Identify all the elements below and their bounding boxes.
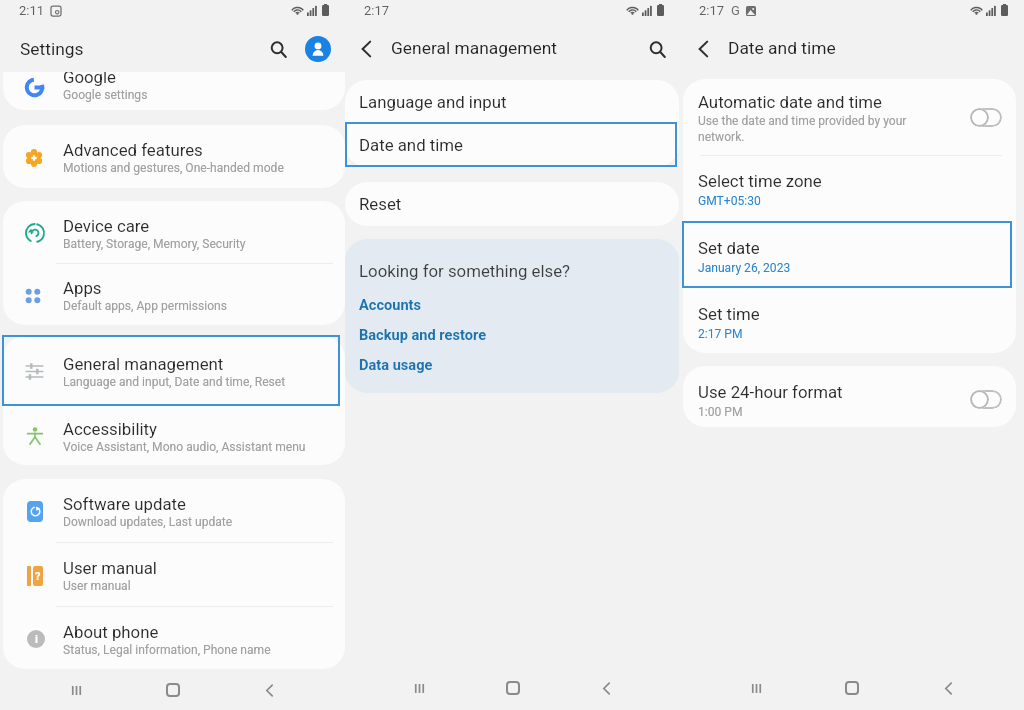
button[interactable]: Recent apps [56,670,96,710]
staticText: Default apps, App permissions [63,299,228,313]
button[interactable]: Backup and restore [359,326,487,343]
staticText: Set date [698,238,760,258]
button[interactable]: Search [641,33,673,65]
button[interactable]: Accessibility [3,405,345,465]
staticText: About phone [63,622,159,642]
button[interactable]: Automatic date and time [683,79,1016,155]
button[interactable]: Back [586,668,626,708]
staticText: January 26, 2023 [698,261,791,275]
staticText: Download updates, Last update [63,515,233,529]
button[interactable]: Select time zone [683,156,1016,222]
staticText: Advanced features [63,140,203,160]
button[interactable]: Use 24-hour format [683,366,1016,427]
button[interactable]: Date and time [345,123,679,167]
button[interactable]: Reset [345,182,679,226]
button[interactable]: Google [3,72,345,110]
button[interactable]: Back [928,668,968,708]
staticText: Reset [359,194,402,214]
button[interactable]: Search [262,33,294,65]
staticText: User manual [63,558,157,578]
staticText: Select time zone [698,171,822,191]
staticText: Accessibility [63,419,157,439]
button[interactable]: Advanced features [3,125,345,188]
staticText: i [35,633,38,646]
staticText: G [731,3,740,18]
button[interactable]: Apps [3,264,345,325]
staticText: Use the date and time provided by your [698,114,907,128]
button[interactable]: Recent apps [736,668,776,708]
staticText: Language and input, Date and time, Reset [63,375,286,389]
staticText: 1:00 PM [698,405,743,419]
staticText: Language and input [359,92,507,112]
button[interactable]: i [3,607,345,669]
button[interactable]: Device care [3,201,345,263]
staticText: Automatic date and time [698,92,882,112]
button[interactable]: Set time [683,284,1016,353]
button[interactable]: Software update [3,479,345,542]
button[interactable]: Accounts [359,296,422,313]
staticText: Google [63,72,117,87]
staticText: Looking for something else? [359,261,571,281]
staticText: Status, Legal information, Phone name [63,643,271,657]
button[interactable]: Account [305,36,331,62]
staticText: User manual [63,579,131,593]
button[interactable]: Language and input [345,80,679,123]
staticText: 2:17 [699,3,725,18]
button[interactable]: Set date [683,222,1016,284]
button[interactable]: Back [352,34,382,64]
staticText: network. [698,130,745,144]
staticText: Voice Assistant, Mono audio, Assistant m… [63,440,306,454]
staticText: General management [63,354,224,374]
button[interactable]: Back [249,670,289,710]
staticText: General management [391,38,557,58]
staticText: Battery, Storage, Memory, Security [63,237,246,251]
staticText: ? [35,570,41,583]
staticText: 2:17 [364,3,390,18]
staticText: 2:17 PM [698,327,743,341]
staticText: GMT+05:30 [698,194,761,208]
button[interactable]: Recent apps [399,668,439,708]
staticText: Date and time [359,135,463,155]
staticText: Use 24-hour format [698,382,843,402]
button[interactable]: Data usage [359,356,433,373]
staticText: Apps [63,278,102,298]
staticText: Motions and gestures, One-handed mode [63,161,284,175]
button[interactable]: Home [493,668,533,708]
staticText: Google settings [63,88,148,102]
staticText: Set time [698,304,760,324]
button[interactable]: Home [832,668,872,708]
staticText: Device care [63,216,150,236]
staticText: Date and time [728,38,836,58]
button[interactable]: Back [689,34,719,64]
button[interactable]: ? [3,543,345,606]
staticText: Settings [20,39,84,59]
button[interactable]: Home [153,670,193,710]
staticText: 2:11 [19,3,45,18]
staticText: Software update [63,494,186,514]
button[interactable]: General management [3,336,345,405]
